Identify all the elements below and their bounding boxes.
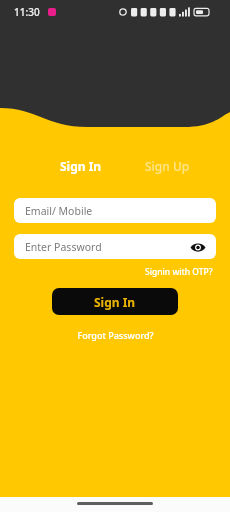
staticText: Signin with OTP? [145,266,213,278]
staticText: Forgot Password? [77,329,154,341]
staticText: Enter Password [25,240,102,254]
staticText: Sign In [60,158,102,174]
button[interactable]: Enter Password [14,234,216,259]
button[interactable]: Show password [188,237,208,257]
button[interactable]: Sign Up [141,156,194,176]
staticText: Sign Up [145,158,190,174]
button[interactable]: Signin with OTP? [142,265,216,279]
button[interactable]: Sign In [52,288,178,315]
button[interactable]: Forgot Password? [71,327,160,343]
button[interactable]: Sign In [56,156,106,176]
staticText: Sign In [94,294,136,310]
staticText: Email/ Mobile [25,204,93,218]
button[interactable]: Email/ Mobile [14,198,216,223]
staticText: 11:30 [14,5,40,19]
